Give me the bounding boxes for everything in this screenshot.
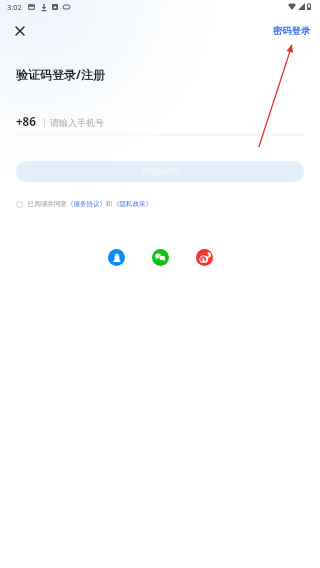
staticText: 《隐私政策》: [113, 200, 152, 208]
button[interactable]: WeChat login: [152, 249, 169, 266]
staticText: 已阅读并同意: [28, 200, 67, 208]
button[interactable]: QQ login: [108, 249, 125, 266]
button[interactable]: 已阅读并同意: [16, 200, 152, 208]
staticText: 验证码登录/注册: [16, 66, 105, 82]
button[interactable]: Weibo login: [196, 249, 213, 266]
staticText: 和: [106, 200, 113, 208]
staticText: 《服务协议》: [67, 200, 106, 208]
staticText: 3:02: [7, 2, 22, 12]
staticText: 获取验证码: [141, 167, 179, 177]
staticText: 密码登录: [273, 25, 311, 37]
button[interactable]: 密码登录: [273, 25, 311, 37]
button[interactable]: Close: [9, 20, 31, 42]
button[interactable]: 获取验证码: [16, 161, 304, 182]
staticText: 请输入手机号: [50, 117, 104, 128]
staticText: +86: [16, 114, 36, 130]
